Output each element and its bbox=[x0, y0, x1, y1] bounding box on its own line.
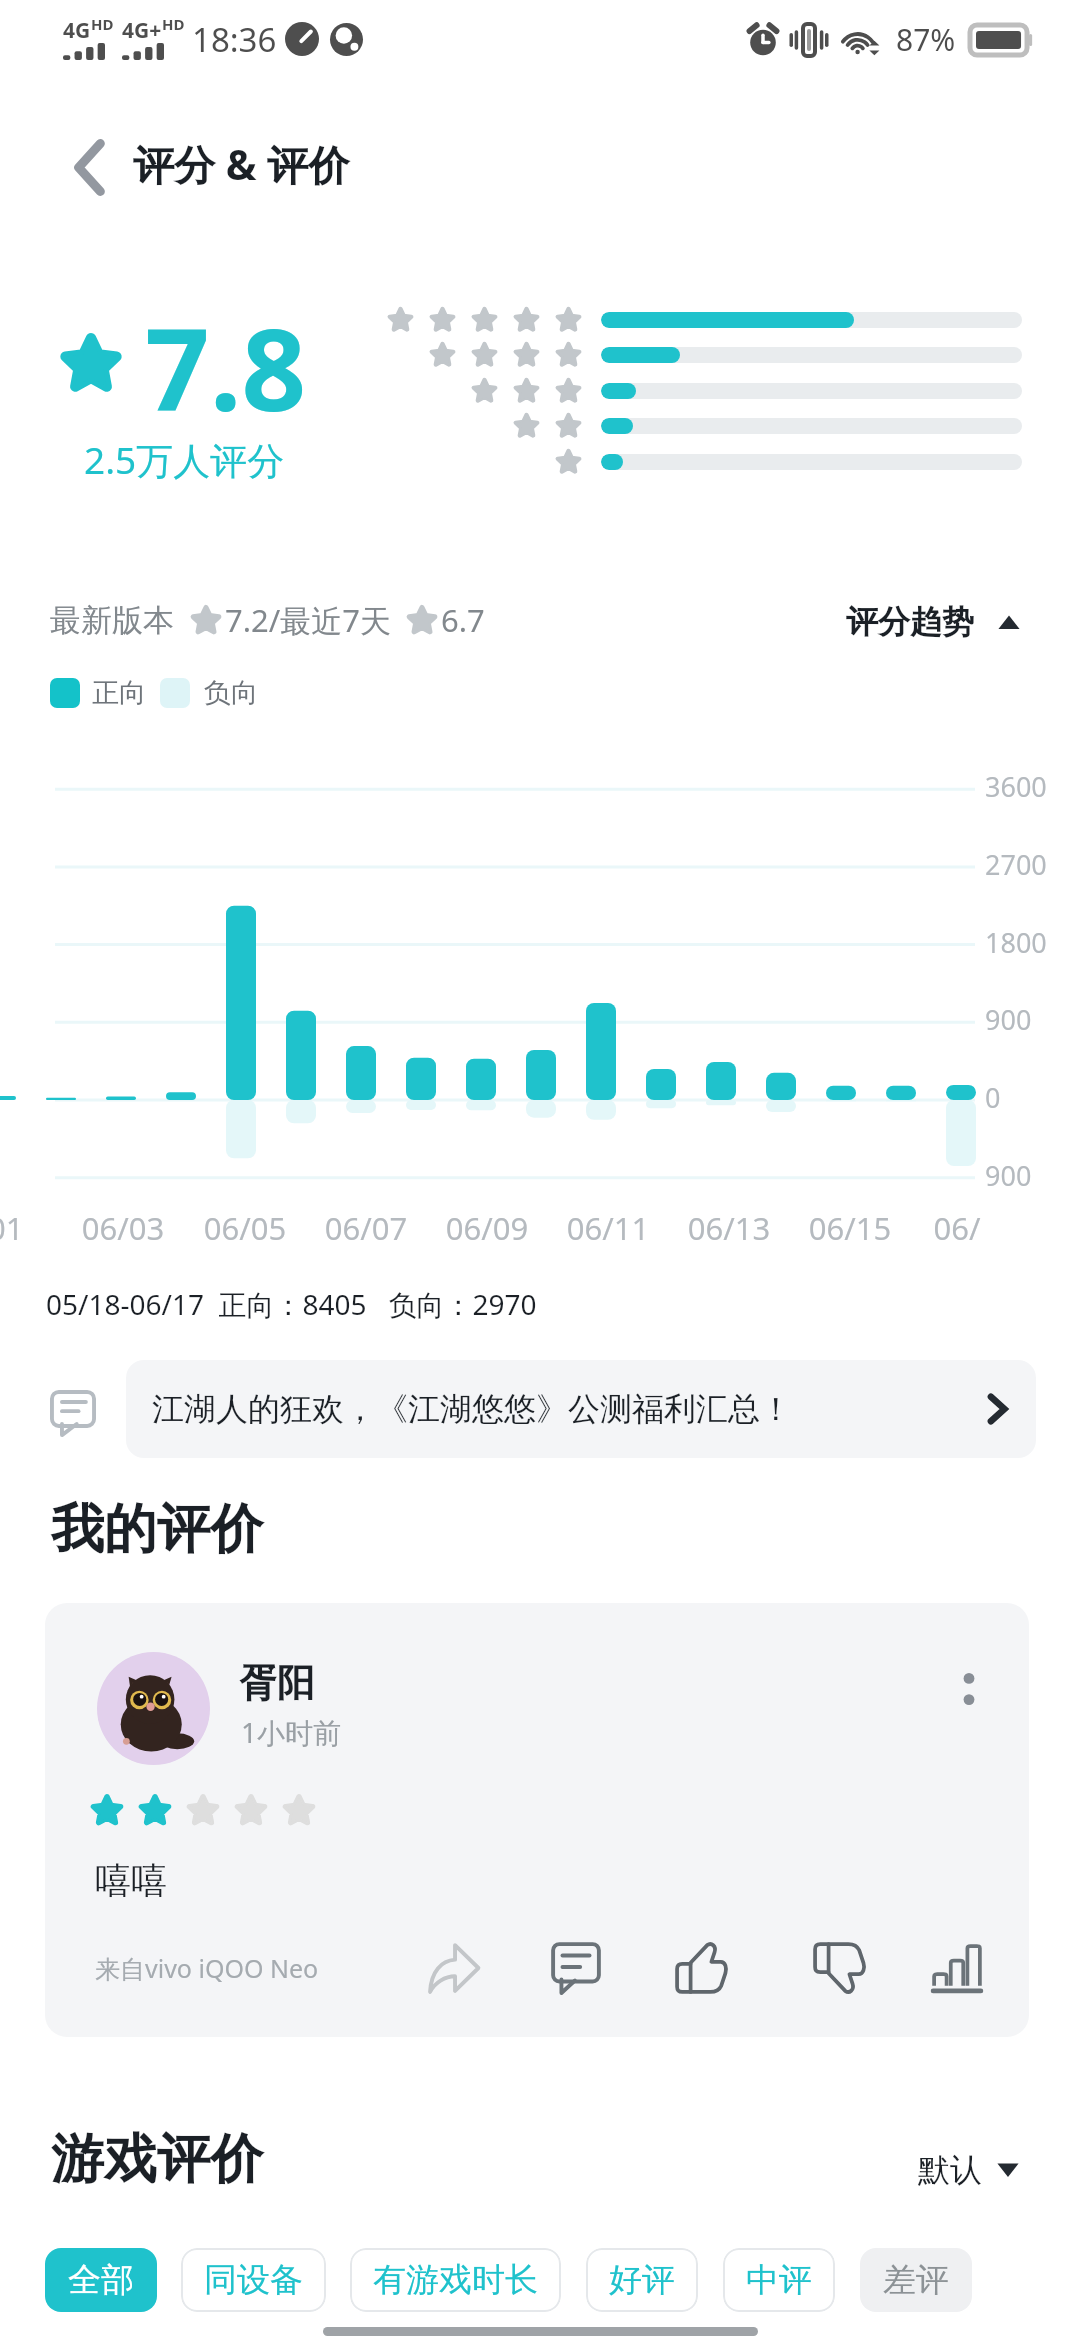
button[interactable]: 同设备 bbox=[181, 2248, 326, 2312]
button[interactable]: 有游戏时长 bbox=[350, 2248, 561, 2312]
staticText: 我的评价 bbox=[51, 1496, 263, 1563]
button[interactable]: 点踩 bbox=[803, 1932, 875, 2004]
staticText: HD bbox=[162, 14, 185, 34]
staticText: 06/13 bbox=[659, 1207, 799, 1249]
staticText: 中评 bbox=[746, 2259, 812, 2301]
staticText: 有游戏时长 bbox=[373, 2259, 538, 2301]
button[interactable]: 分享 bbox=[418, 1932, 490, 2004]
staticText: 06/ bbox=[887, 1207, 1027, 1249]
staticText: 评分趋势 bbox=[846, 602, 974, 642]
staticText: 7.8 bbox=[145, 290, 307, 444]
button[interactable]: 评分趋势 bbox=[840, 596, 1026, 648]
staticText: 06/11 bbox=[538, 1207, 678, 1249]
staticText: 18:36 bbox=[192, 17, 277, 62]
staticText: 最新版本 bbox=[50, 601, 174, 640]
button[interactable]: 江湖人的狂欢，《江湖悠悠》公测福利汇总！ bbox=[126, 1360, 1036, 1458]
staticText: 06/05 bbox=[175, 1207, 315, 1249]
staticText: 4G+ bbox=[122, 16, 162, 45]
staticText: 05/18-06/17 正向：8405 负向：2970 bbox=[46, 1285, 537, 1323]
staticText: 06/09 bbox=[417, 1207, 557, 1249]
button[interactable]: 好评 bbox=[586, 2248, 698, 2312]
button[interactable]: 差评 bbox=[860, 2248, 972, 2312]
staticText: 1800 bbox=[985, 924, 1047, 961]
staticText: 06/07 bbox=[296, 1207, 436, 1249]
staticText: 6.7 bbox=[441, 599, 485, 641]
staticText: HD bbox=[91, 14, 114, 34]
staticText: 2.5万人评分 bbox=[84, 434, 285, 485]
staticText: 87% bbox=[896, 19, 956, 60]
staticText: /01 bbox=[0, 1207, 70, 1249]
staticText: 900 bbox=[985, 1157, 1032, 1194]
staticText: 3600 bbox=[985, 768, 1047, 805]
staticText: 默认 bbox=[918, 2150, 982, 2190]
staticText: 好评 bbox=[609, 2259, 675, 2301]
button[interactable]: 更多 bbox=[933, 1653, 1005, 1725]
staticText: 06/15 bbox=[780, 1207, 920, 1249]
staticText: 正向 bbox=[92, 676, 146, 710]
button[interactable]: 返回 bbox=[45, 123, 133, 211]
staticText: 差评 bbox=[883, 2259, 949, 2301]
button[interactable]: 中评 bbox=[723, 2248, 835, 2312]
button[interactable]: 点赞 bbox=[665, 1932, 737, 2004]
button[interactable]: 默认 bbox=[912, 2144, 1025, 2196]
staticText: 4G bbox=[63, 16, 91, 45]
staticText: 评分 & 评价 bbox=[133, 136, 350, 192]
staticText: 来自vivo iQOO Neo bbox=[95, 1951, 319, 1985]
staticText: 嘻嘻 bbox=[95, 1858, 167, 1903]
staticText: 0 bbox=[985, 1079, 1001, 1116]
button[interactable]: 胥阳 bbox=[45, 1603, 1029, 2037]
button[interactable]: 数据 bbox=[921, 1932, 993, 2004]
button[interactable]: 评论 bbox=[540, 1932, 612, 2004]
staticText: 游戏评价 bbox=[51, 2126, 263, 2193]
staticText: 胥阳 bbox=[239, 1659, 315, 1707]
staticText: 负向 bbox=[204, 676, 258, 710]
button[interactable]: 全部 bbox=[45, 2248, 157, 2312]
staticText: 06/03 bbox=[53, 1207, 193, 1249]
staticText: 1小时前 bbox=[241, 1713, 342, 1751]
staticText: 900 bbox=[985, 1001, 1032, 1038]
staticText: 2700 bbox=[985, 846, 1047, 883]
staticText: 7.2/最近7天 bbox=[225, 599, 392, 641]
staticText: 全部 bbox=[68, 2259, 134, 2301]
staticText: 江湖人的狂欢，《江湖悠悠》公测福利汇总！ bbox=[152, 1389, 980, 1429]
staticText: 同设备 bbox=[204, 2259, 303, 2301]
